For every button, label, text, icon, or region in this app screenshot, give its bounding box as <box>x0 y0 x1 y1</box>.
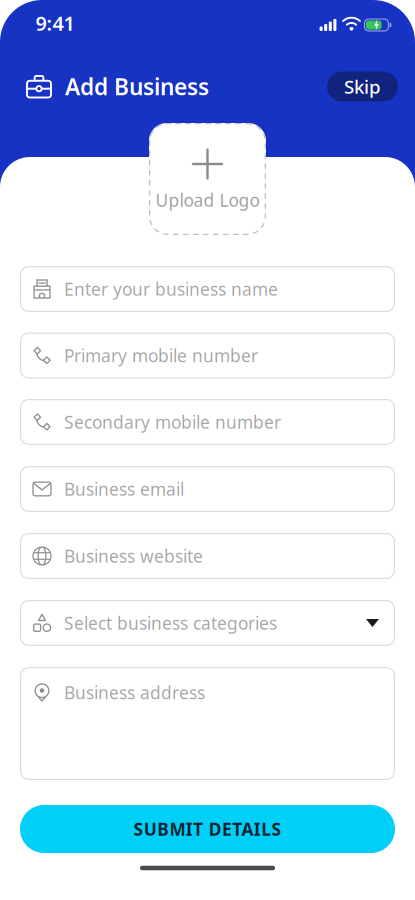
button[interactable]: Select business categories <box>20 600 395 646</box>
staticText: Business website <box>64 544 203 567</box>
staticText: Upload Logo <box>155 188 259 211</box>
staticText: 9:41 <box>35 10 74 36</box>
button[interactable]: Business address <box>20 667 395 780</box>
button[interactable]: Enter your business name <box>20 266 395 312</box>
button[interactable]: Business website <box>20 533 395 579</box>
staticText: Primary mobile number <box>64 344 258 367</box>
button[interactable]: Primary mobile number <box>20 332 395 378</box>
staticText: Business email <box>64 477 184 500</box>
staticText: SUBMIT DETAILS <box>134 817 281 840</box>
button[interactable]: Skip <box>327 71 398 101</box>
staticText: Secondary mobile number <box>64 410 281 433</box>
button[interactable]: Business email <box>20 466 395 512</box>
staticText: Select business categories <box>64 611 277 634</box>
staticText: Enter your business name <box>64 277 278 300</box>
button[interactable]: Secondary mobile number <box>20 399 395 445</box>
staticText: Business address <box>64 681 205 704</box>
button[interactable]: Upload Logo <box>149 123 266 235</box>
staticText: Skip <box>344 74 381 99</box>
staticText: Add Business <box>65 71 209 101</box>
button[interactable]: SUBMIT DETAILS <box>20 805 395 853</box>
